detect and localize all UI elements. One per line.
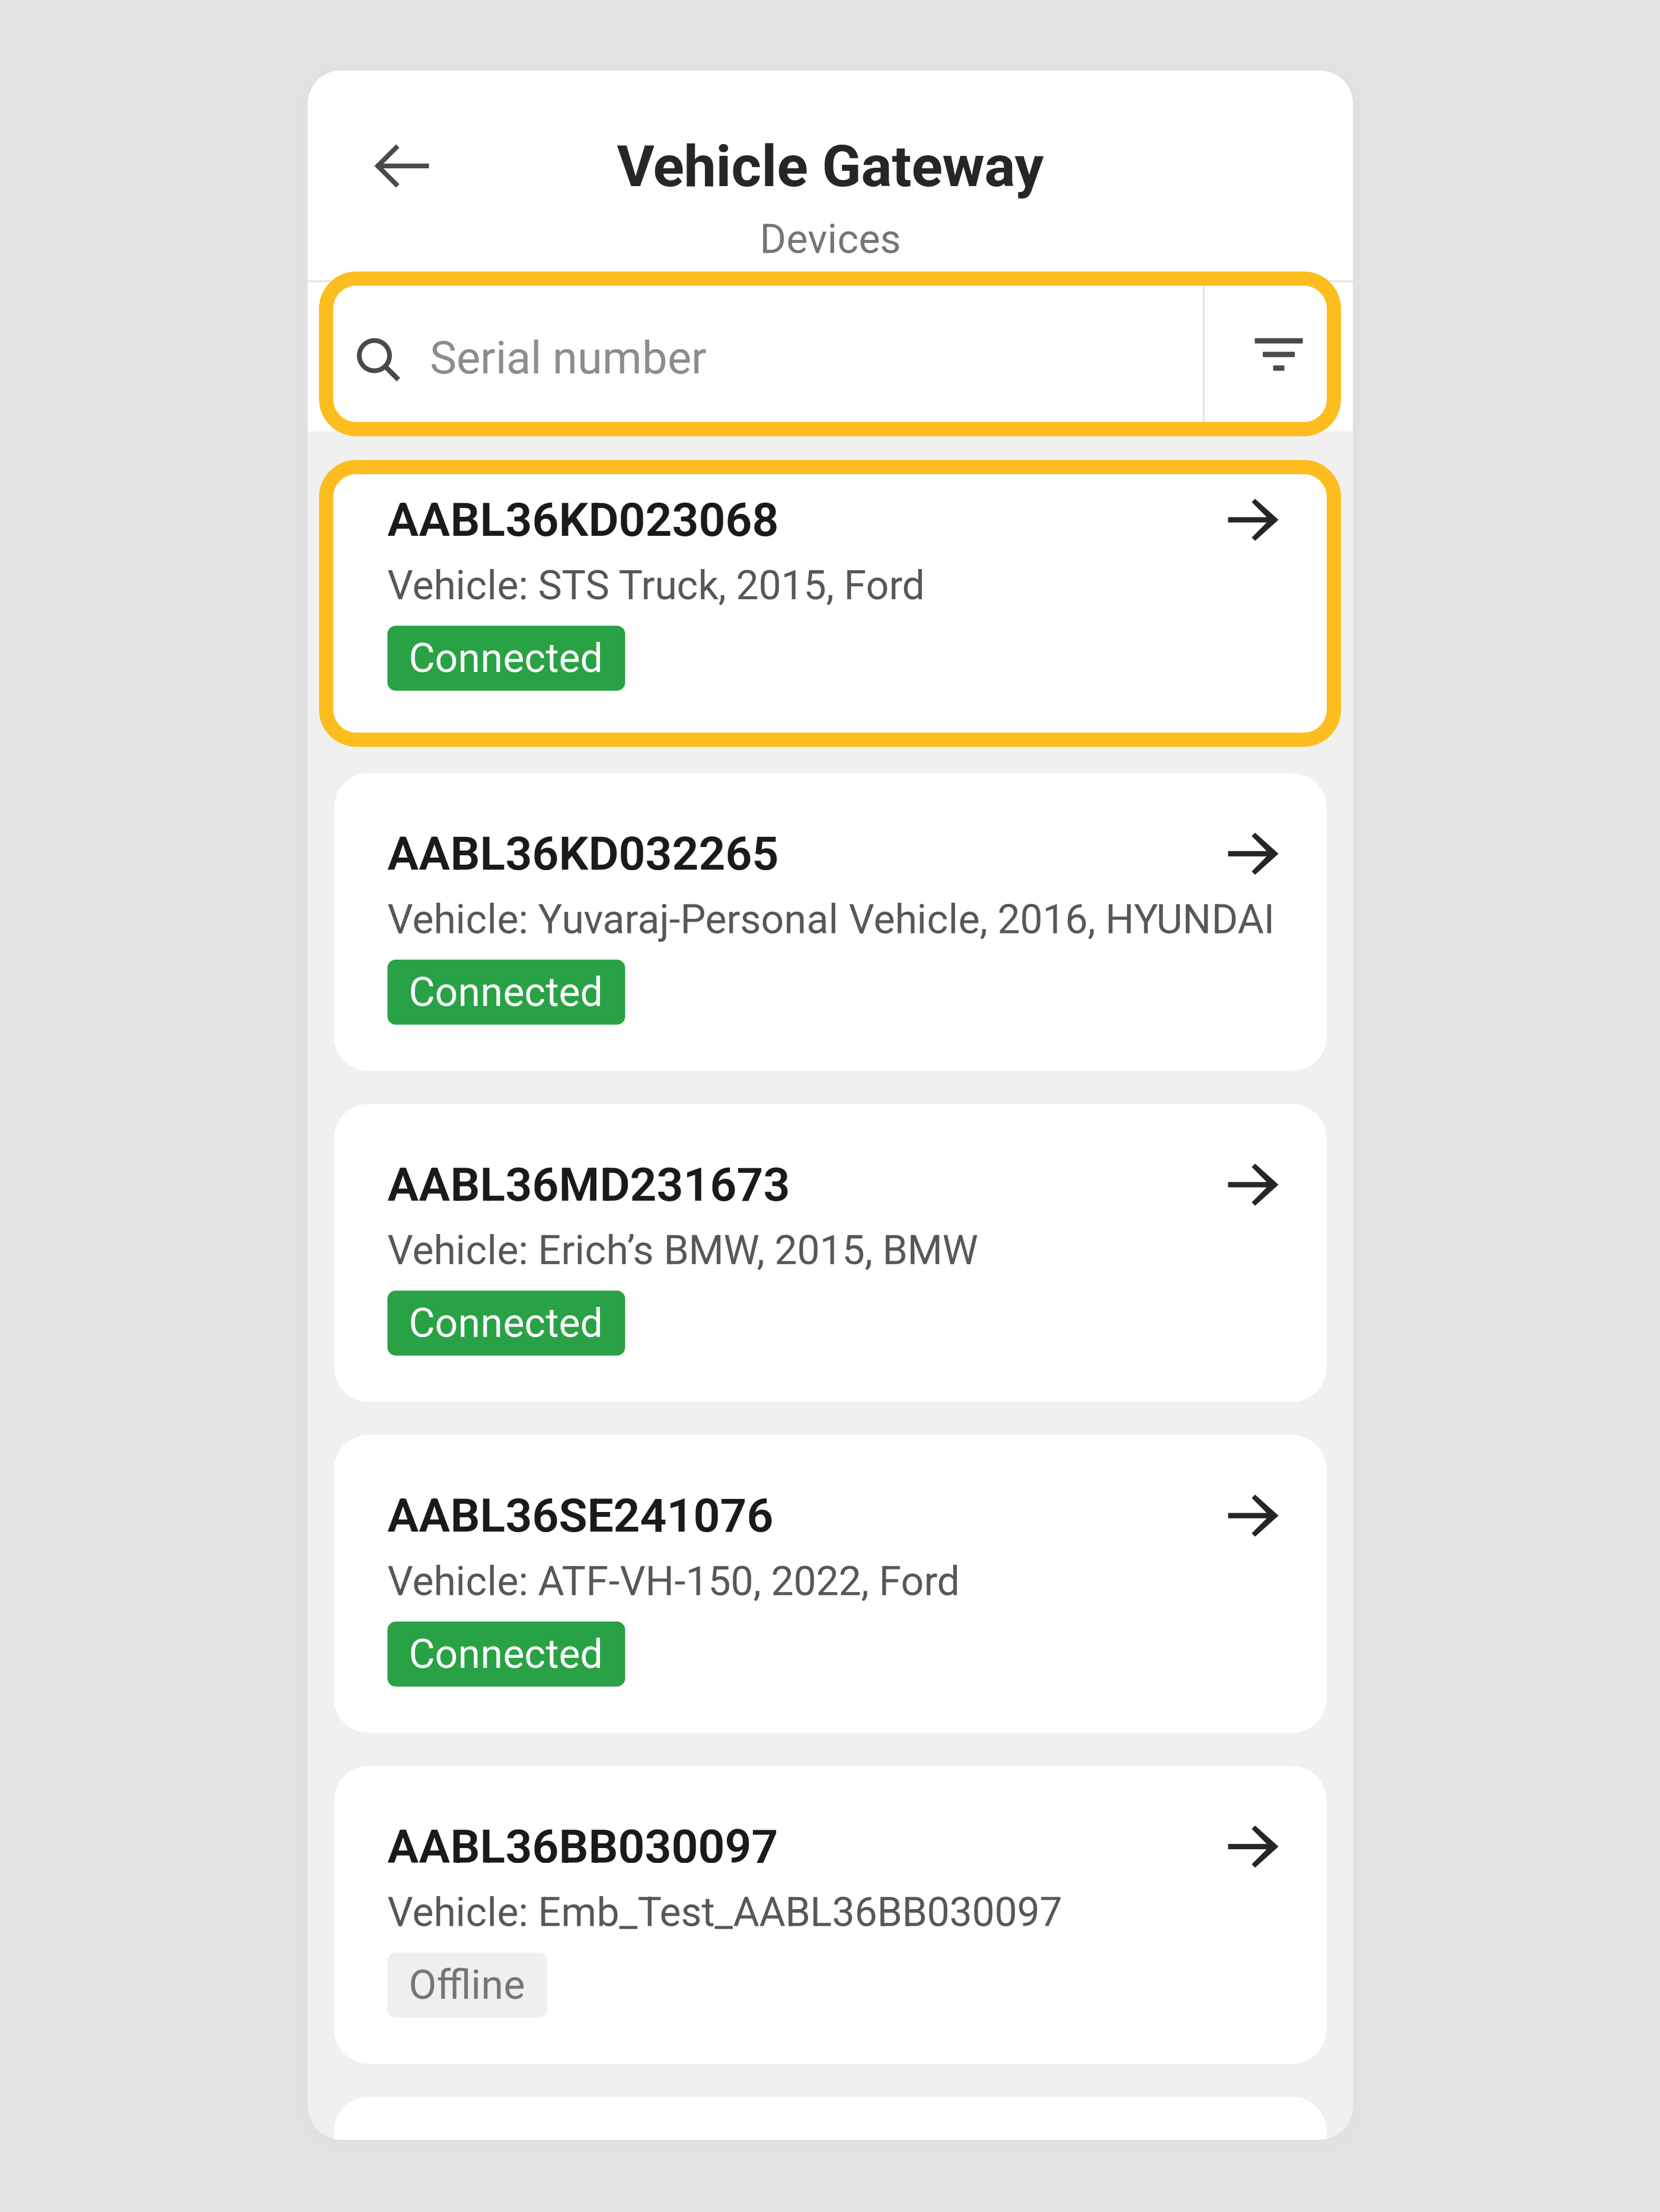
- staticText: Vehicle: ATF-VH-150, 2022, Ford: [387, 1558, 960, 1605]
- button[interactable]: Back: [357, 122, 446, 210]
- staticText: Connected: [409, 635, 603, 682]
- staticText: AABL36KD023068: [387, 492, 779, 547]
- staticText: AABL36MD231673: [387, 1157, 790, 1212]
- staticText: Vehicle: STS Truck, 2015, Ford: [387, 562, 925, 609]
- staticText: Connected: [409, 1630, 603, 1678]
- button[interactable]: Filter: [1205, 282, 1353, 431]
- staticText: Offline: [409, 1961, 525, 2009]
- staticText: AABL36SE241076: [387, 1488, 773, 1543]
- staticText: Devices: [760, 216, 901, 263]
- button[interactable]: AABL36MD231673: [334, 1104, 1327, 1402]
- button[interactable]: AABL36BB030097: [334, 1766, 1327, 2064]
- button[interactable]: Serial number: [308, 282, 1203, 431]
- button[interactable]: AABL36SE241076: [334, 1435, 1327, 1733]
- staticText: Vehicle: Yuvaraj-Personal Vehicle, 2016,…: [387, 896, 1274, 943]
- staticText: Vehicle: Emb_Test_AABL36BB030097: [387, 1889, 1062, 1936]
- staticText: Connected: [409, 969, 603, 1016]
- staticText: AABL36BB030097: [387, 1819, 778, 1874]
- button[interactable]: AABL36KD019422: [334, 2097, 1327, 2212]
- button[interactable]: AABL36KD032265: [334, 773, 1327, 1071]
- staticText: Serial number: [430, 332, 707, 384]
- staticText: Connected: [409, 1299, 603, 1347]
- button[interactable]: AABL36KD023068: [334, 461, 1327, 740]
- staticText: Vehicle: Erich’s BMW, 2015, BMW: [387, 1227, 978, 1274]
- staticText: AABL36KD032265: [387, 826, 779, 881]
- staticText: Vehicle Gateway: [617, 133, 1044, 200]
